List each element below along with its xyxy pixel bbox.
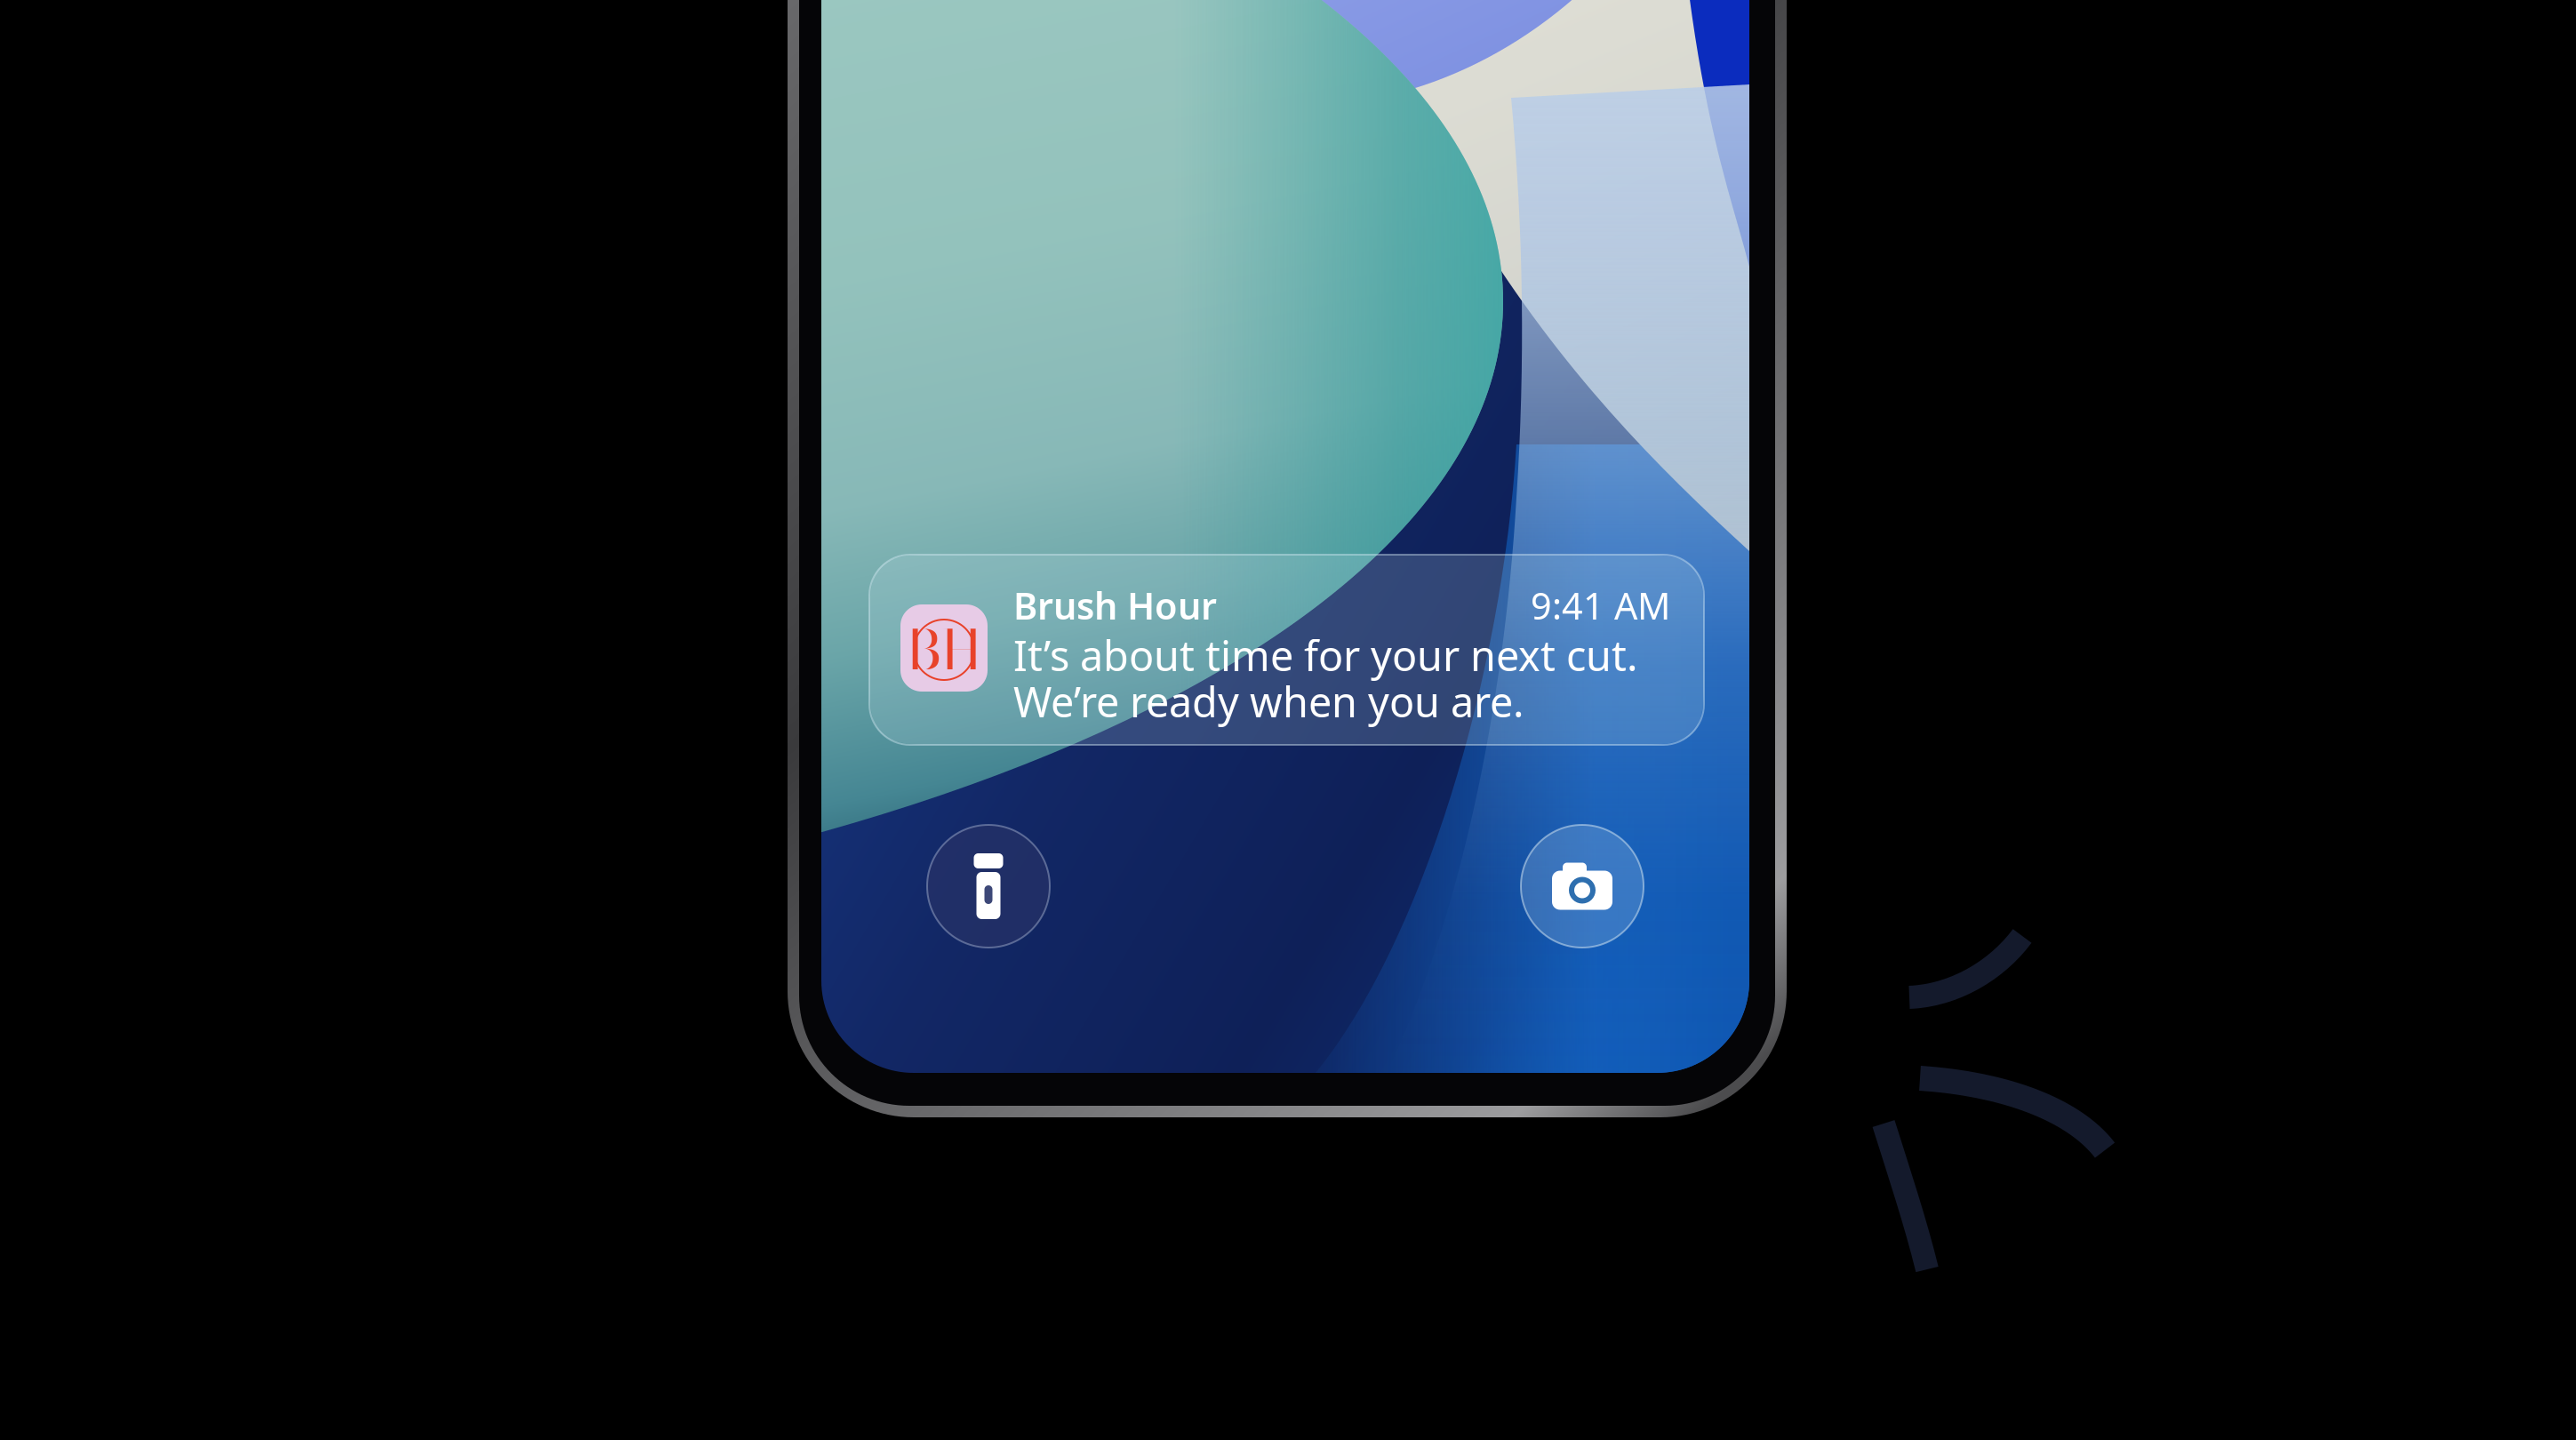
staticText: BH [907, 608, 981, 691]
button[interactable]: Camera [1521, 825, 1644, 948]
staticText: We’re ready when you are. [1013, 674, 1524, 729]
staticText: It’s about time for your next cut. [1013, 628, 1638, 683]
button[interactable]: Flashlight [927, 825, 1050, 948]
staticText: 9:41 AM [1531, 581, 1670, 630]
button[interactable]: BH [869, 555, 1704, 745]
staticText: Brush Hour [1013, 581, 1217, 630]
